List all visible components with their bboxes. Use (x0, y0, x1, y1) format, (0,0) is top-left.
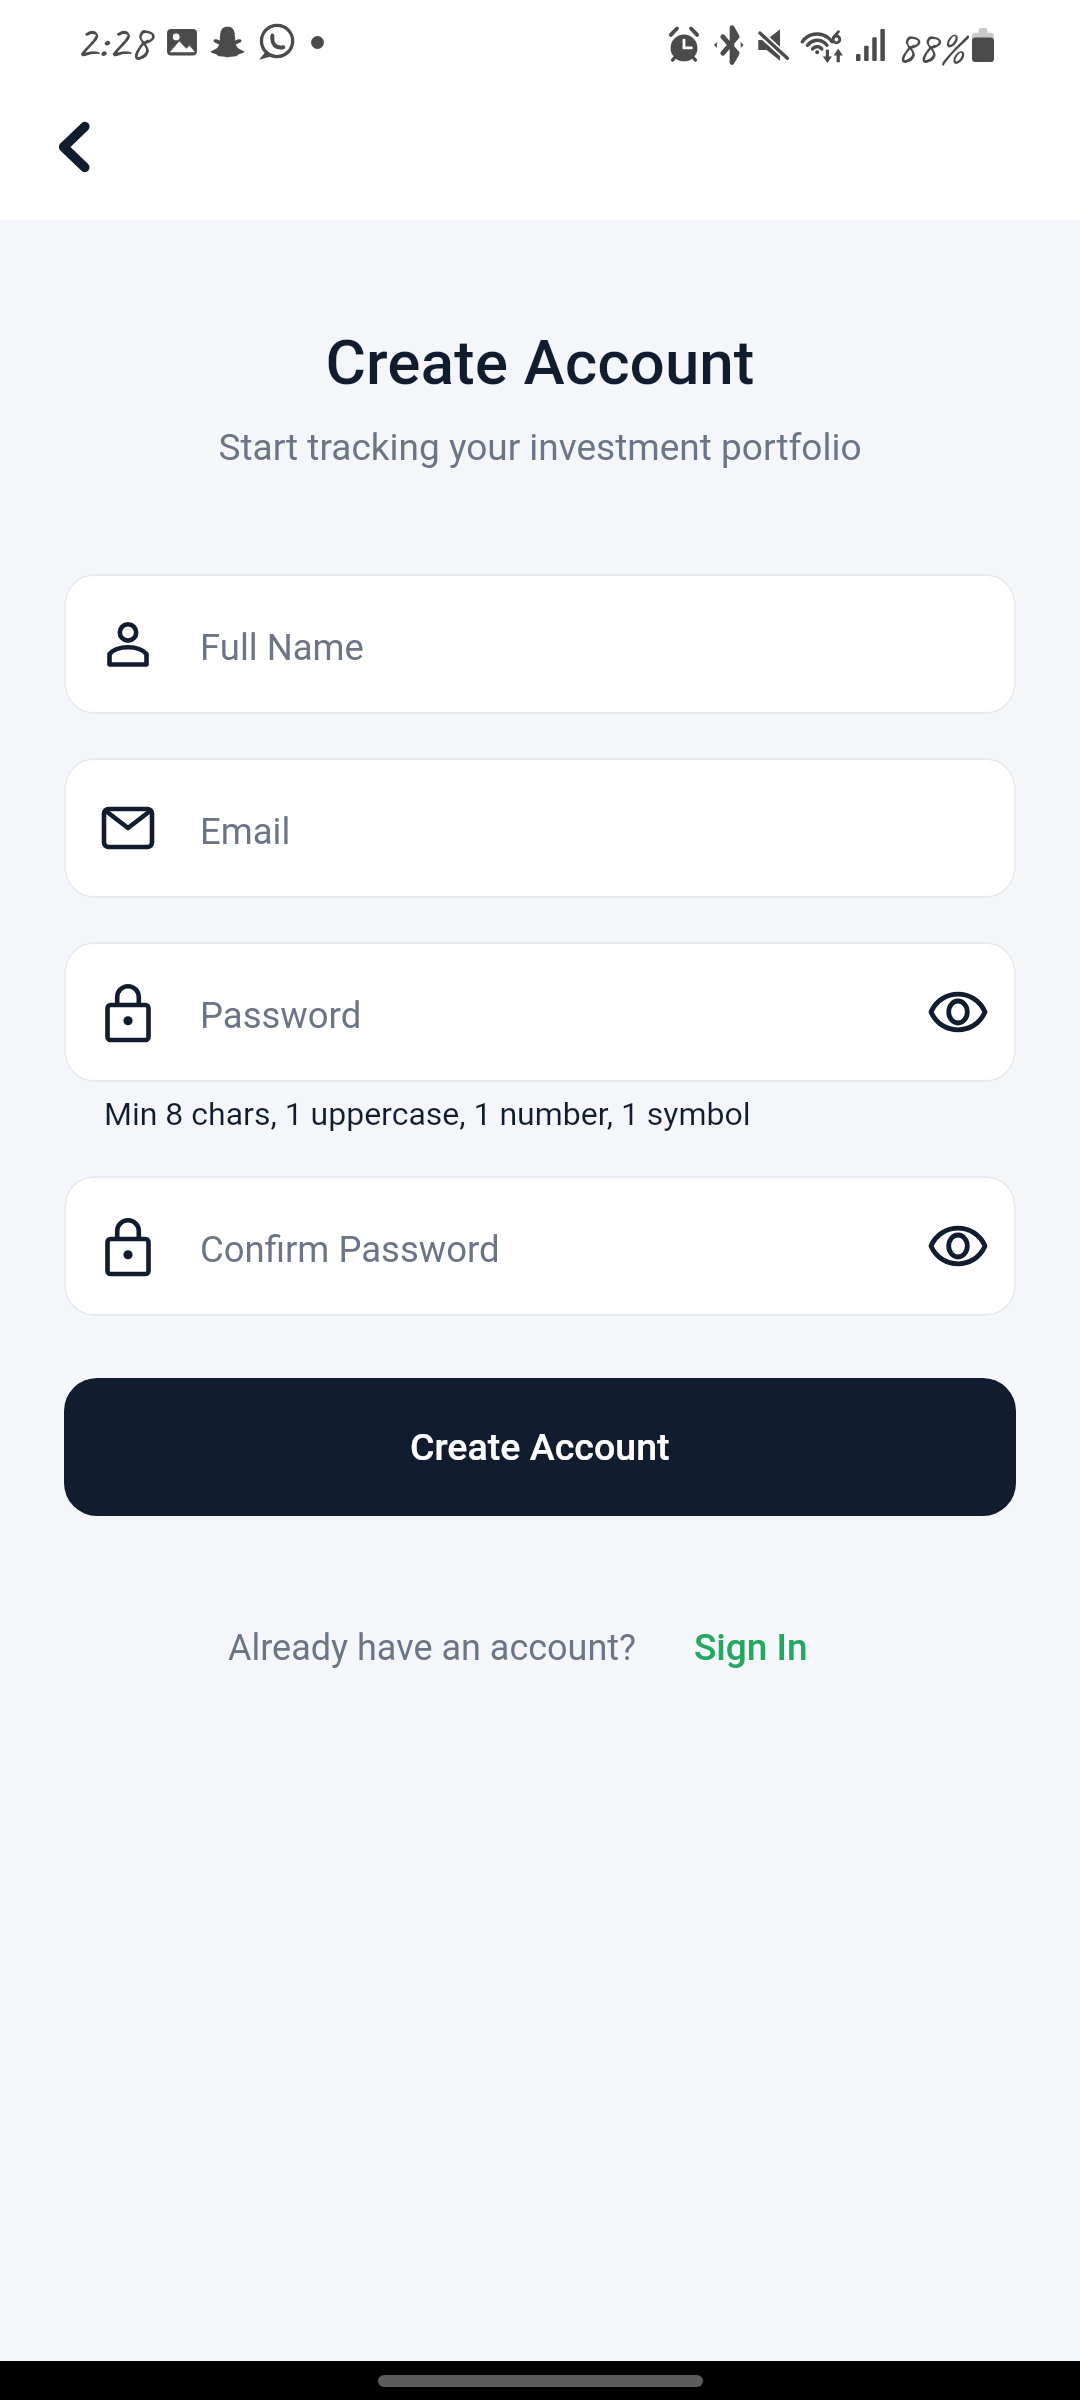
button[interactable]: Create Account (64, 1378, 1016, 1516)
button[interactable]: Password (64, 942, 1016, 1082)
staticText: Email (200, 810, 291, 853)
staticText: Create Account (410, 1425, 670, 1469)
staticText: Already have an account? (228, 1627, 637, 1669)
button[interactable]: Sign In (692, 1620, 810, 1675)
button[interactable]: Email (64, 758, 1016, 898)
staticText: Full Name (200, 626, 364, 669)
staticText: Password (200, 994, 362, 1037)
button[interactable]: Confirm Password (64, 1176, 1016, 1316)
button[interactable]: Back (26, 101, 118, 193)
staticText: Create Account (0, 326, 1080, 399)
staticText: Confirm Password (200, 1228, 500, 1271)
staticText: 88% (896, 17, 965, 75)
staticText: Sign In (694, 1626, 808, 1669)
button[interactable]: Show password (910, 964, 1006, 1060)
staticText: Start tracking your investment portfolio (0, 426, 1080, 469)
staticText: 2:28 (75, 11, 151, 73)
staticText: Min 8 chars, 1 uppercase, 1 number, 1 sy… (104, 1095, 751, 1133)
button[interactable]: Full Name (64, 574, 1016, 714)
button[interactable]: Show password (910, 1198, 1006, 1294)
